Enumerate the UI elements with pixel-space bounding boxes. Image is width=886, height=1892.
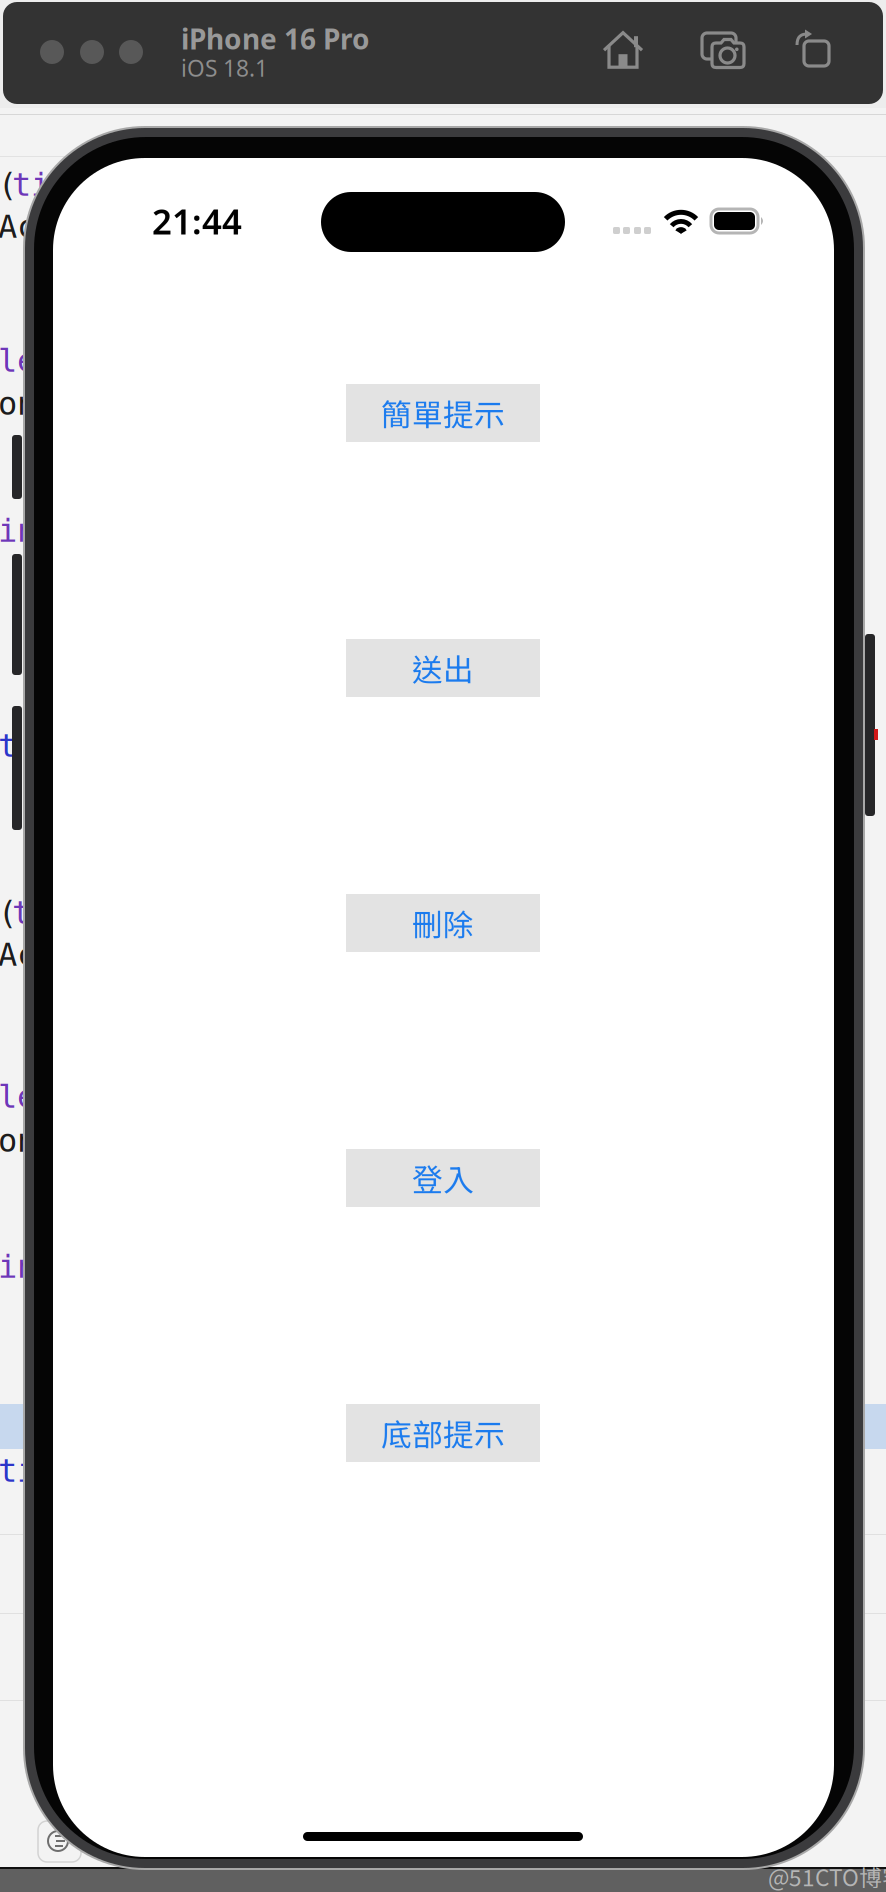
staticText: 21:44 (152, 198, 242, 244)
button[interactable]: 登入 (346, 1149, 540, 1207)
button[interactable]: Screenshot (702, 33, 746, 69)
button[interactable]: 底部提示 (346, 1404, 540, 1462)
staticText: in (0, 512, 36, 549)
staticText: ti (0, 1452, 36, 1489)
staticText: @51CTO博客 (768, 1860, 886, 1892)
staticText: 底部提示 (381, 1411, 505, 1455)
staticText: 刪除 (412, 901, 474, 945)
staticText: on (0, 385, 36, 422)
button[interactable]: 刪除 (346, 894, 540, 952)
staticText: iPhone 16 Pro (181, 20, 370, 57)
staticText: Ac (0, 936, 36, 973)
staticText: Ac (0, 208, 36, 245)
staticText: ( (0, 166, 17, 203)
staticText: in (0, 1248, 36, 1285)
staticText: le (0, 342, 36, 379)
staticText: 登入 (412, 1156, 474, 1200)
staticText: t (0, 727, 17, 764)
staticText: ( (0, 894, 17, 931)
button[interactable]: 簡單提示 (346, 384, 540, 442)
staticText: 送出 (412, 646, 474, 690)
button[interactable]: 送出 (346, 639, 540, 697)
staticText: tit (12, 166, 69, 203)
staticText: le (0, 1078, 36, 1115)
button[interactable]: Rotate (796, 28, 832, 66)
staticText: on (0, 1122, 36, 1159)
staticText: iOS 18.1 (181, 53, 268, 83)
staticText: 簡單提示 (381, 391, 505, 435)
button[interactable]: Home (603, 31, 643, 69)
staticText: t (12, 894, 31, 931)
